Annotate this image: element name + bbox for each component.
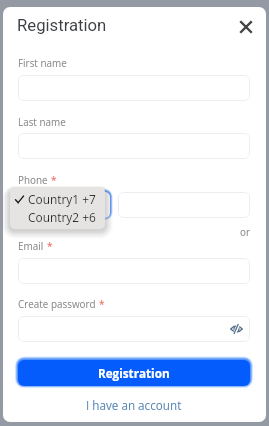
- staticText: Phone: [18, 173, 48, 186]
- staticText: *: [99, 297, 105, 311]
- staticText: *: [51, 173, 57, 187]
- staticText: Registration: [98, 365, 170, 381]
- staticText: First name: [18, 56, 67, 69]
- staticText: Country1 +7: [28, 191, 96, 207]
- staticText: *: [47, 239, 53, 253]
- button[interactable]: Country2 +6: [10, 208, 105, 226]
- button[interactable]: Show password: [18, 316, 250, 342]
- staticText: or: [228, 225, 250, 238]
- staticText: Country2 +6: [28, 209, 96, 225]
- button[interactable]: [18, 75, 250, 101]
- staticText: Last name: [18, 115, 66, 128]
- button[interactable]: [18, 258, 250, 284]
- button[interactable]: Registration: [18, 360, 250, 386]
- button[interactable]: Country1 +7: [10, 190, 105, 208]
- button[interactable]: Show password: [228, 322, 245, 336]
- button[interactable]: Close: [233, 14, 259, 40]
- staticText: Create password: [18, 297, 96, 310]
- staticText: Registration: [17, 16, 107, 36]
- staticText: Email: [18, 239, 44, 252]
- button[interactable]: Country code: [18, 192, 110, 218]
- button[interactable]: [18, 133, 250, 159]
- staticText: I have an account: [86, 397, 182, 413]
- button[interactable]: [118, 192, 250, 218]
- button[interactable]: I have an account: [85, 396, 183, 413]
